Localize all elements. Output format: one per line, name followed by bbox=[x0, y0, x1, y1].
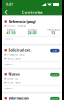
staticText: Inicio: 12/05/24 bbox=[7, 24, 25, 28]
staticText: Abrir bbox=[51, 73, 58, 76]
staticText: Solicitud ext. bbox=[8, 48, 31, 53]
button[interactable]: Ver bbox=[50, 49, 60, 52]
staticText: Vence: 20/05 bbox=[7, 57, 20, 60]
staticText: 41.50 bbox=[6, 31, 15, 35]
staticText: Controles bbox=[21, 9, 42, 15]
staticText: Ver bbox=[53, 49, 57, 52]
staticText: Entrega bbox=[27, 28, 36, 32]
staticText: 28.00 bbox=[27, 31, 36, 35]
staticText: Información bbox=[8, 96, 28, 100]
staticText: Final: 04/05 bbox=[7, 81, 20, 84]
staticText: Abrir bbox=[51, 97, 58, 100]
staticText: Pendiente bbox=[47, 28, 60, 32]
staticText: Detalle bbox=[4, 62, 12, 66]
button[interactable]: Back bbox=[3, 9, 9, 16]
button[interactable]: Abrir bbox=[50, 97, 60, 100]
staticText: 13 bbox=[51, 31, 55, 35]
staticText: Nuevo bbox=[8, 72, 19, 77]
staticText: Líder: LG bbox=[7, 77, 18, 80]
staticText: Detalle bbox=[4, 86, 12, 90]
staticText: Presenta: 12/05 bbox=[7, 53, 24, 56]
staticText: Avance bbox=[7, 28, 15, 32]
button[interactable]: Abrir bbox=[50, 73, 60, 76]
staticText: Referencia (prog) bbox=[8, 19, 35, 24]
staticText: Detalle bbox=[4, 37, 12, 40]
staticText: 9:41 bbox=[6, 2, 13, 7]
